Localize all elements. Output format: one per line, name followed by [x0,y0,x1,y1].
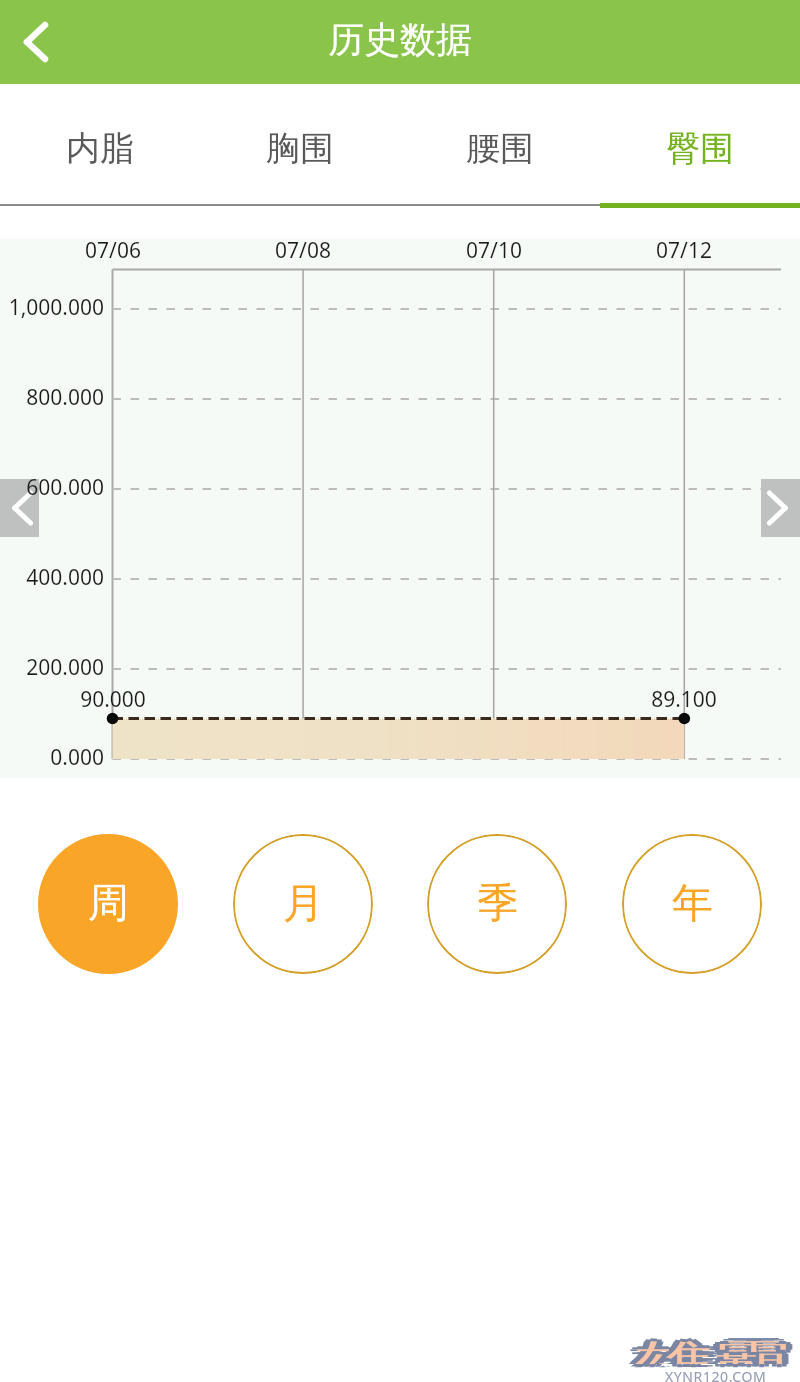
button[interactable]: Back [0,6,72,78]
button[interactable]: 周 [38,834,178,974]
staticText: 雄霸 [627,1336,783,1364]
staticText: 腰围 [466,127,534,170]
staticText: 月 [283,878,324,930]
button[interactable]: 月 [233,834,373,974]
button[interactable]: 臀围 [600,84,800,204]
staticText: 400.000 [26,563,104,592]
button[interactable]: 内脂 [0,84,200,204]
staticText: 89.100 [651,685,717,714]
staticText: 800.000 [26,383,104,412]
staticText: 雄霸 [641,1336,797,1364]
button[interactable]: 年 [622,834,762,974]
staticText: 07/12 [656,236,712,265]
button[interactable]: 季 [427,834,567,974]
staticText: 雄霸 [634,1339,790,1367]
button[interactable]: Next page [761,479,800,537]
staticText: 雄霸 [634,1336,790,1364]
staticText: 臀围 [666,127,734,170]
button[interactable]: 腰围 [400,84,600,204]
staticText: 07/08 [275,236,331,265]
staticText: XYNR120.COM [665,1367,767,1382]
staticText: 年 [672,878,713,930]
staticText: 600.000 [26,473,104,502]
staticText: 90.000 [80,685,146,714]
staticText: 历史数据 [328,17,472,62]
staticText: 雄霸 [639,1334,795,1362]
staticText: 季 [477,878,518,930]
button[interactable]: Previous page [0,479,39,537]
staticText: 07/06 [85,236,141,265]
staticText: 1,000.000 [8,293,104,322]
staticText: 雄霸 [634,1333,790,1361]
staticText: 胸围 [266,127,334,170]
staticText: 07/10 [466,236,522,265]
staticText: 雄霸 [639,1338,795,1366]
staticText: 雄霸 [629,1334,785,1362]
button[interactable]: 胸围 [200,84,400,204]
staticText: 周 [88,878,129,930]
staticText: 内脂 [66,127,134,170]
staticText: 200.000 [26,653,104,682]
staticText: 雄霸 [629,1338,785,1366]
staticText: 0.000 [50,743,104,772]
